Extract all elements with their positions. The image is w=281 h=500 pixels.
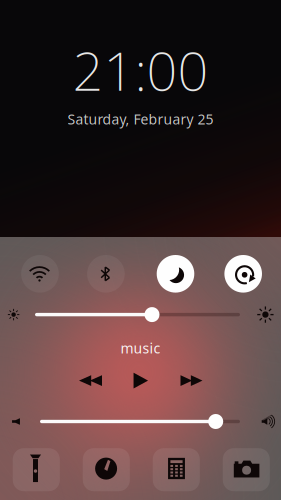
- button[interactable]: Timer: [83, 448, 130, 491]
- staticText: Saturday, February 25: [67, 109, 213, 129]
- button[interactable]: Rotation Lock: [224, 255, 262, 293]
- button[interactable]: Next track: [180, 375, 202, 386]
- button[interactable]: Camera: [223, 448, 270, 491]
- button[interactable]: Bluetooth: [87, 255, 125, 293]
- button[interactable]: Flashlight: [13, 448, 60, 491]
- button[interactable]: Wi-Fi: [21, 255, 59, 293]
- button[interactable]: Previous track: [79, 375, 102, 386]
- button[interactable]: Do Not Disturb: [157, 255, 194, 293]
- button[interactable]: Play: [134, 373, 148, 388]
- staticText: music: [120, 339, 160, 358]
- staticText: 21:00: [72, 33, 208, 106]
- button[interactable]: Calculator: [153, 448, 200, 491]
